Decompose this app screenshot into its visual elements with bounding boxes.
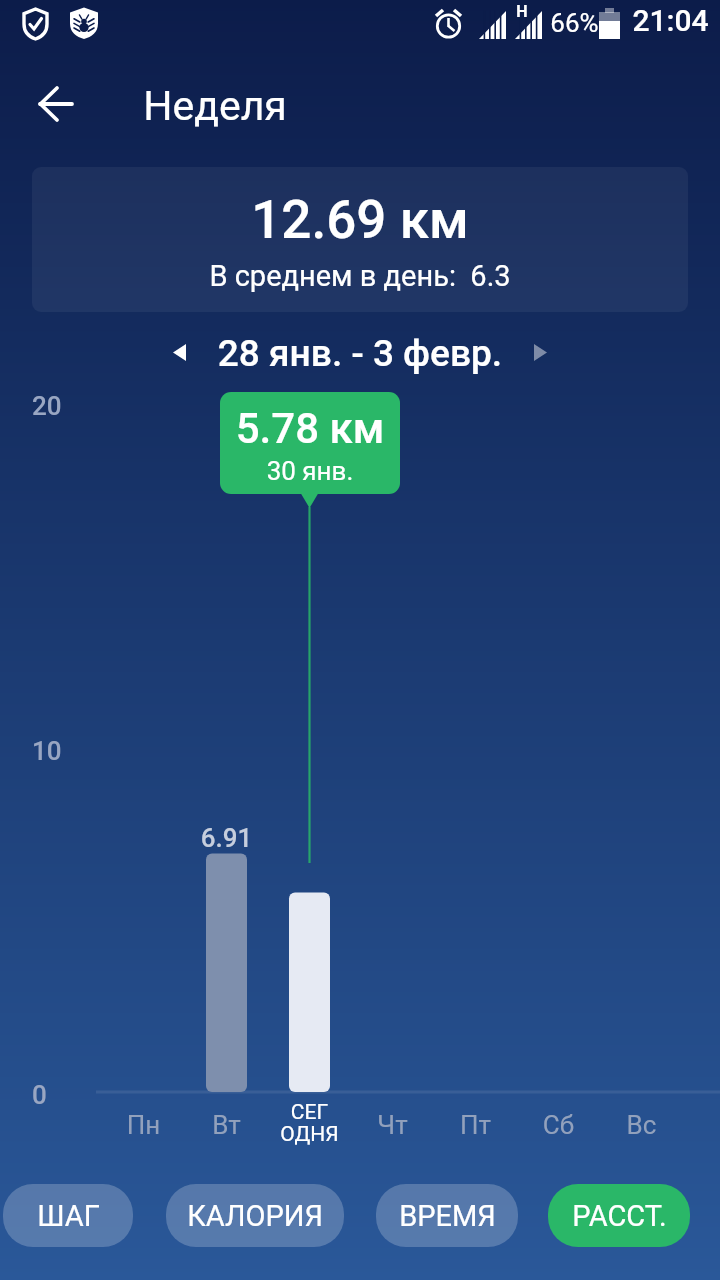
staticText: Неделя xyxy=(143,82,287,130)
button[interactable]: 12.69 км xyxy=(32,167,688,312)
staticText: H xyxy=(516,2,528,21)
staticText: 10 xyxy=(32,736,62,766)
button[interactable]: 5.78 км xyxy=(220,392,400,494)
staticText: Вт xyxy=(185,1110,268,1140)
staticText: СЕГ ОДНЯ xyxy=(268,1100,351,1147)
staticText: 66% xyxy=(550,8,599,38)
staticText: Пн xyxy=(102,1110,185,1140)
staticText: Чт xyxy=(351,1110,434,1140)
button[interactable]: Back xyxy=(26,73,88,135)
button[interactable]: ШАГ xyxy=(3,1184,133,1247)
staticText: 30 янв. xyxy=(220,456,400,486)
staticText: КАЛОРИЯ xyxy=(187,1199,323,1233)
staticText: 21:04 xyxy=(632,3,709,38)
staticText: 20 xyxy=(32,391,62,421)
button[interactable]: Next week xyxy=(518,326,566,374)
staticText: Пт xyxy=(434,1110,517,1140)
button[interactable]: РАССТ. xyxy=(548,1184,690,1247)
staticText: ВРЕМЯ xyxy=(399,1199,496,1233)
button[interactable]: ВРЕМЯ xyxy=(376,1184,518,1247)
staticText: В среднем в день: 6.3 xyxy=(32,259,688,293)
button[interactable]: КАЛОРИЯ xyxy=(166,1184,344,1247)
staticText: РАССТ. xyxy=(572,1199,667,1233)
staticText: 0 xyxy=(32,1080,47,1110)
staticText: Вс xyxy=(600,1110,683,1140)
staticText: 6.91 xyxy=(186,823,267,853)
staticText: 28 янв. - 3 февр. xyxy=(0,332,720,375)
staticText: 5.78 км xyxy=(220,404,400,453)
staticText: 12.69 км xyxy=(32,189,688,251)
staticText: ШАГ xyxy=(37,1199,100,1233)
button[interactable]: Previous week xyxy=(156,326,204,374)
staticText: Сб xyxy=(517,1110,600,1140)
